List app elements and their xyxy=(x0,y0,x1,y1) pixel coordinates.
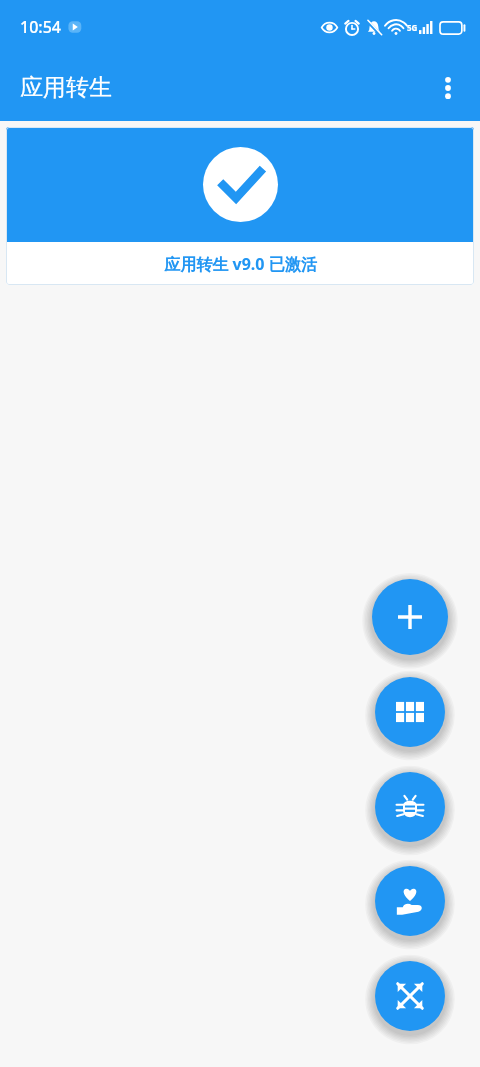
staticText: 应用转生 xyxy=(20,73,112,102)
button[interactable]: 应用转生 v9.0 已激活 xyxy=(6,127,474,285)
staticText: 10:54 xyxy=(20,16,61,38)
button[interactable]: Donate xyxy=(375,866,445,936)
button[interactable]: App grid xyxy=(375,677,445,747)
button[interactable]: Fullscreen xyxy=(375,961,445,1031)
staticText: 5G xyxy=(407,22,418,33)
staticText: 应用转生 v9.0 已激活 xyxy=(164,253,317,275)
button[interactable]: Add xyxy=(372,579,448,655)
button[interactable]: Debug xyxy=(375,772,445,842)
button[interactable]: More options xyxy=(428,68,468,108)
